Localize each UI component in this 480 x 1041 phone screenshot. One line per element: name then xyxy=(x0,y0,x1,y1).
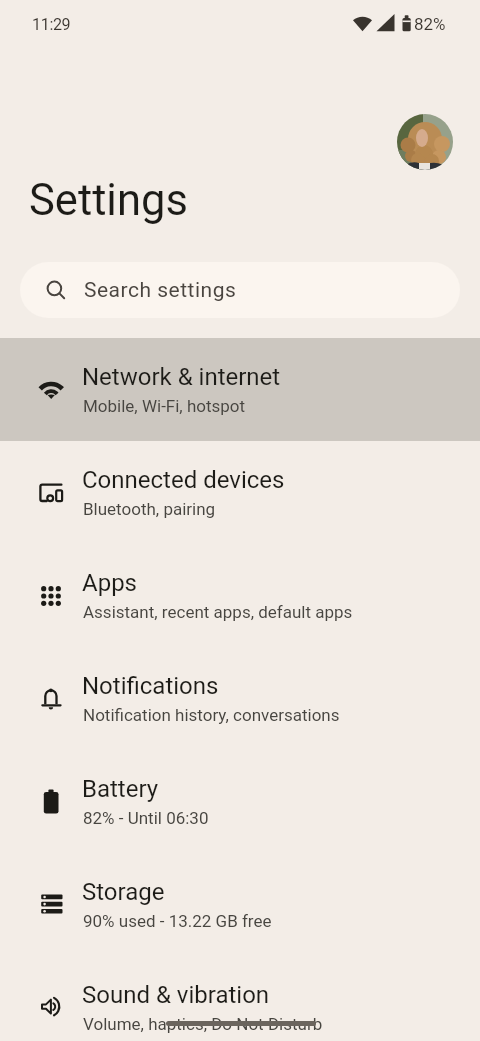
staticText: 82% - Until 06:30 xyxy=(83,808,209,828)
staticText: Assistant, recent apps, default apps xyxy=(83,602,353,622)
staticText: Network & internet xyxy=(82,363,281,391)
staticText: Volume, haptics, Do Not Disturb xyxy=(83,1014,323,1034)
staticText: 82% xyxy=(414,14,446,34)
button[interactable]: Storage xyxy=(0,853,480,956)
button[interactable]: Connected devices xyxy=(0,441,480,544)
button[interactable]: Sound & vibration xyxy=(0,956,480,1041)
staticText: Apps xyxy=(82,569,137,597)
button[interactable]: Notifications xyxy=(0,647,480,750)
staticText: 90% used - 13.22 GB free xyxy=(83,911,272,931)
button[interactable]: Apps xyxy=(0,544,480,647)
button[interactable]: Network & internet xyxy=(0,338,480,441)
staticText: Storage xyxy=(82,878,165,906)
staticText: Notifications xyxy=(82,672,219,700)
staticText: 11:29 xyxy=(32,15,71,34)
staticText: Search settings xyxy=(84,278,237,303)
staticText: Bluetooth, pairing xyxy=(83,499,216,519)
staticText: Settings xyxy=(29,175,188,226)
staticText: Notification history, conversations xyxy=(83,705,340,725)
staticText: Connected devices xyxy=(82,466,285,494)
staticText: Battery xyxy=(82,775,159,803)
staticText: Mobile, Wi-Fi, hotspot xyxy=(83,396,246,416)
button[interactable]: Search settings xyxy=(20,262,460,318)
button[interactable] xyxy=(397,114,453,170)
staticText: Sound & vibration xyxy=(82,981,270,1009)
button[interactable]: Battery xyxy=(0,750,480,853)
